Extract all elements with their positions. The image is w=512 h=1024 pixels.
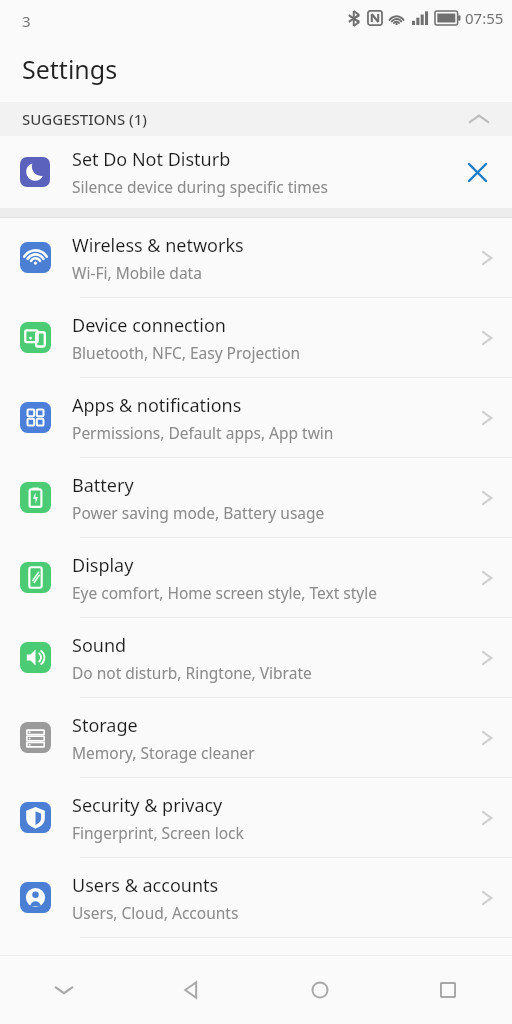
staticText: Security & privacy: [72, 793, 223, 818]
staticText: Settings: [22, 52, 118, 86]
staticText: Users, Cloud, Accounts: [72, 902, 239, 923]
button[interactable]: Hide navigation bar: [0, 956, 128, 1024]
button[interactable]: Display: [0, 538, 512, 617]
button[interactable]: SUGGESTIONS (1): [0, 102, 512, 136]
staticText: Wi-Fi, Mobile data: [72, 262, 202, 283]
staticText: Silence device during specific times: [72, 176, 328, 197]
staticText: 3: [22, 11, 31, 31]
staticText: Permissions, Default apps, App twin: [72, 422, 334, 443]
button[interactable]: Users & accounts: [0, 858, 512, 937]
staticText: Users & accounts: [72, 873, 219, 898]
staticText: Power saving mode, Battery usage: [72, 502, 325, 523]
staticText: Device connection: [72, 313, 226, 338]
staticText: Bluetooth, NFC, Easy Projection: [72, 342, 301, 363]
staticText: Display: [72, 553, 134, 578]
button[interactable]: Dismiss suggestion: [460, 155, 494, 189]
staticText: SUGGESTIONS (1): [22, 109, 147, 129]
button[interactable]: Sound: [0, 618, 512, 697]
button[interactable]: Security & privacy: [0, 778, 512, 857]
staticText: Apps & notifications: [72, 393, 242, 418]
button[interactable]: Wireless & networks: [0, 218, 512, 297]
staticText: Do not disturb, Ringtone, Vibrate: [72, 662, 312, 683]
button[interactable]: Back: [128, 956, 256, 1024]
staticText: Sound: [72, 633, 127, 658]
button[interactable]: Battery: [0, 458, 512, 537]
button[interactable]: Recents: [384, 956, 512, 1024]
button[interactable]: Set Do Not Disturb: [0, 136, 512, 208]
staticText: Fingerprint, Screen lock: [72, 822, 244, 843]
staticText: Set Do Not Disturb: [72, 147, 231, 172]
staticText: Storage: [72, 713, 138, 738]
other: Collapse: [468, 112, 490, 126]
staticText: Wireless & networks: [72, 233, 244, 258]
staticText: Battery: [72, 473, 134, 498]
staticText: Eye comfort, Home screen style, Text sty…: [72, 582, 377, 603]
staticText: Memory, Storage cleaner: [72, 742, 255, 763]
button[interactable]: Storage: [0, 698, 512, 777]
staticText: 07:55: [465, 8, 504, 28]
button[interactable]: Device connection: [0, 298, 512, 377]
button[interactable]: Apps & notifications: [0, 378, 512, 457]
button[interactable]: Home: [256, 956, 384, 1024]
